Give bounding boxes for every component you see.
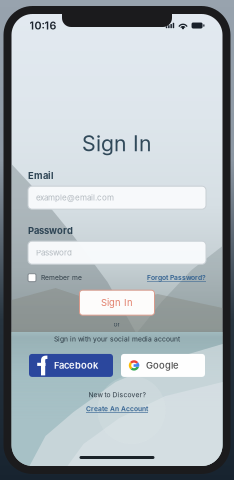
staticText: or [113, 320, 120, 328]
staticText: 10:16 [29, 19, 56, 32]
staticText: Remeber me [41, 274, 82, 282]
staticText: Email [28, 170, 54, 181]
staticText: New to Discover? [88, 391, 145, 399]
button[interactable]: Sign In [79, 290, 154, 315]
staticText: Password [28, 225, 73, 236]
staticText: Forgot Password? [147, 274, 206, 282]
staticText: Create An Account [86, 405, 148, 413]
button[interactable]: Forgot Password? [147, 274, 206, 282]
staticText: Sign In [101, 297, 133, 308]
staticText: Sign In [82, 131, 152, 156]
button[interactable]: Google [121, 354, 205, 377]
staticText: example@email.com [36, 193, 114, 202]
staticText: Sign in with your social media account [54, 335, 180, 343]
button[interactable]: Facebook [29, 354, 113, 377]
button[interactable]: Create An Account [86, 405, 148, 413]
staticText: Password [36, 248, 72, 257]
staticText: Facebook [54, 360, 98, 371]
button[interactable]: Remeber me [28, 274, 82, 282]
staticText: Google [146, 360, 178, 371]
